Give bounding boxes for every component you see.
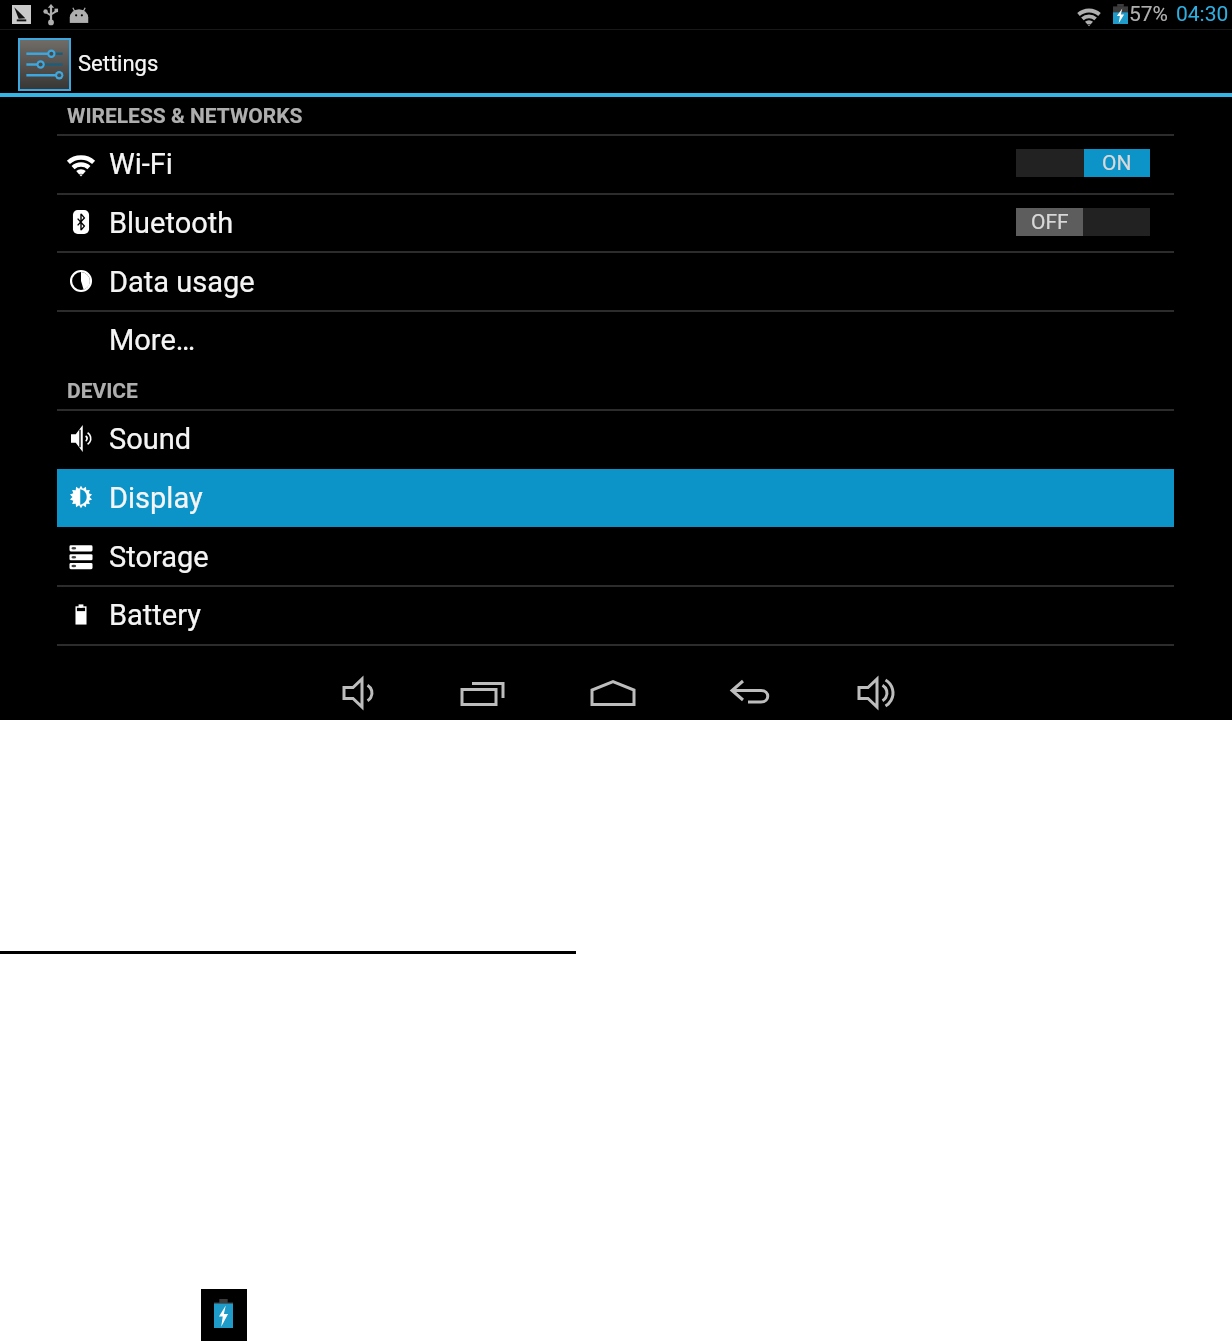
button[interactable] (57, 135, 1174, 193)
staticText: OFF (1031, 210, 1069, 235)
button[interactable]: Volume up (844, 665, 904, 720)
button[interactable] (57, 586, 1174, 644)
button[interactable]: Back (720, 665, 780, 720)
staticText: Data usage (109, 265, 255, 299)
staticText: ON (1102, 151, 1132, 176)
staticText: Display (109, 481, 203, 515)
staticText: DEVICE (67, 379, 138, 404)
button[interactable]: OFF (1016, 208, 1150, 236)
staticText: Settings (78, 51, 159, 77)
button[interactable] (57, 410, 1174, 468)
staticText: Sound (109, 422, 192, 456)
button[interactable]: Recents (453, 665, 513, 720)
button[interactable] (57, 194, 1174, 252)
staticText: Wi-Fi (109, 147, 173, 181)
staticText: WIRELESS & NETWORKS (67, 104, 303, 129)
button[interactable]: ON (1016, 149, 1150, 177)
button[interactable] (57, 469, 1174, 527)
button[interactable] (57, 527, 1174, 585)
staticText: Bluetooth (109, 206, 234, 240)
staticText: Storage (109, 540, 209, 574)
button[interactable] (57, 252, 1174, 310)
staticText: Battery (109, 598, 201, 632)
button[interactable] (57, 311, 1174, 369)
button[interactable]: Volume down (329, 665, 389, 720)
staticText: 04:30 (1176, 2, 1229, 27)
staticText: 57% (1129, 2, 1168, 27)
staticText: More… (109, 323, 196, 357)
button[interactable]: Home (583, 665, 643, 720)
